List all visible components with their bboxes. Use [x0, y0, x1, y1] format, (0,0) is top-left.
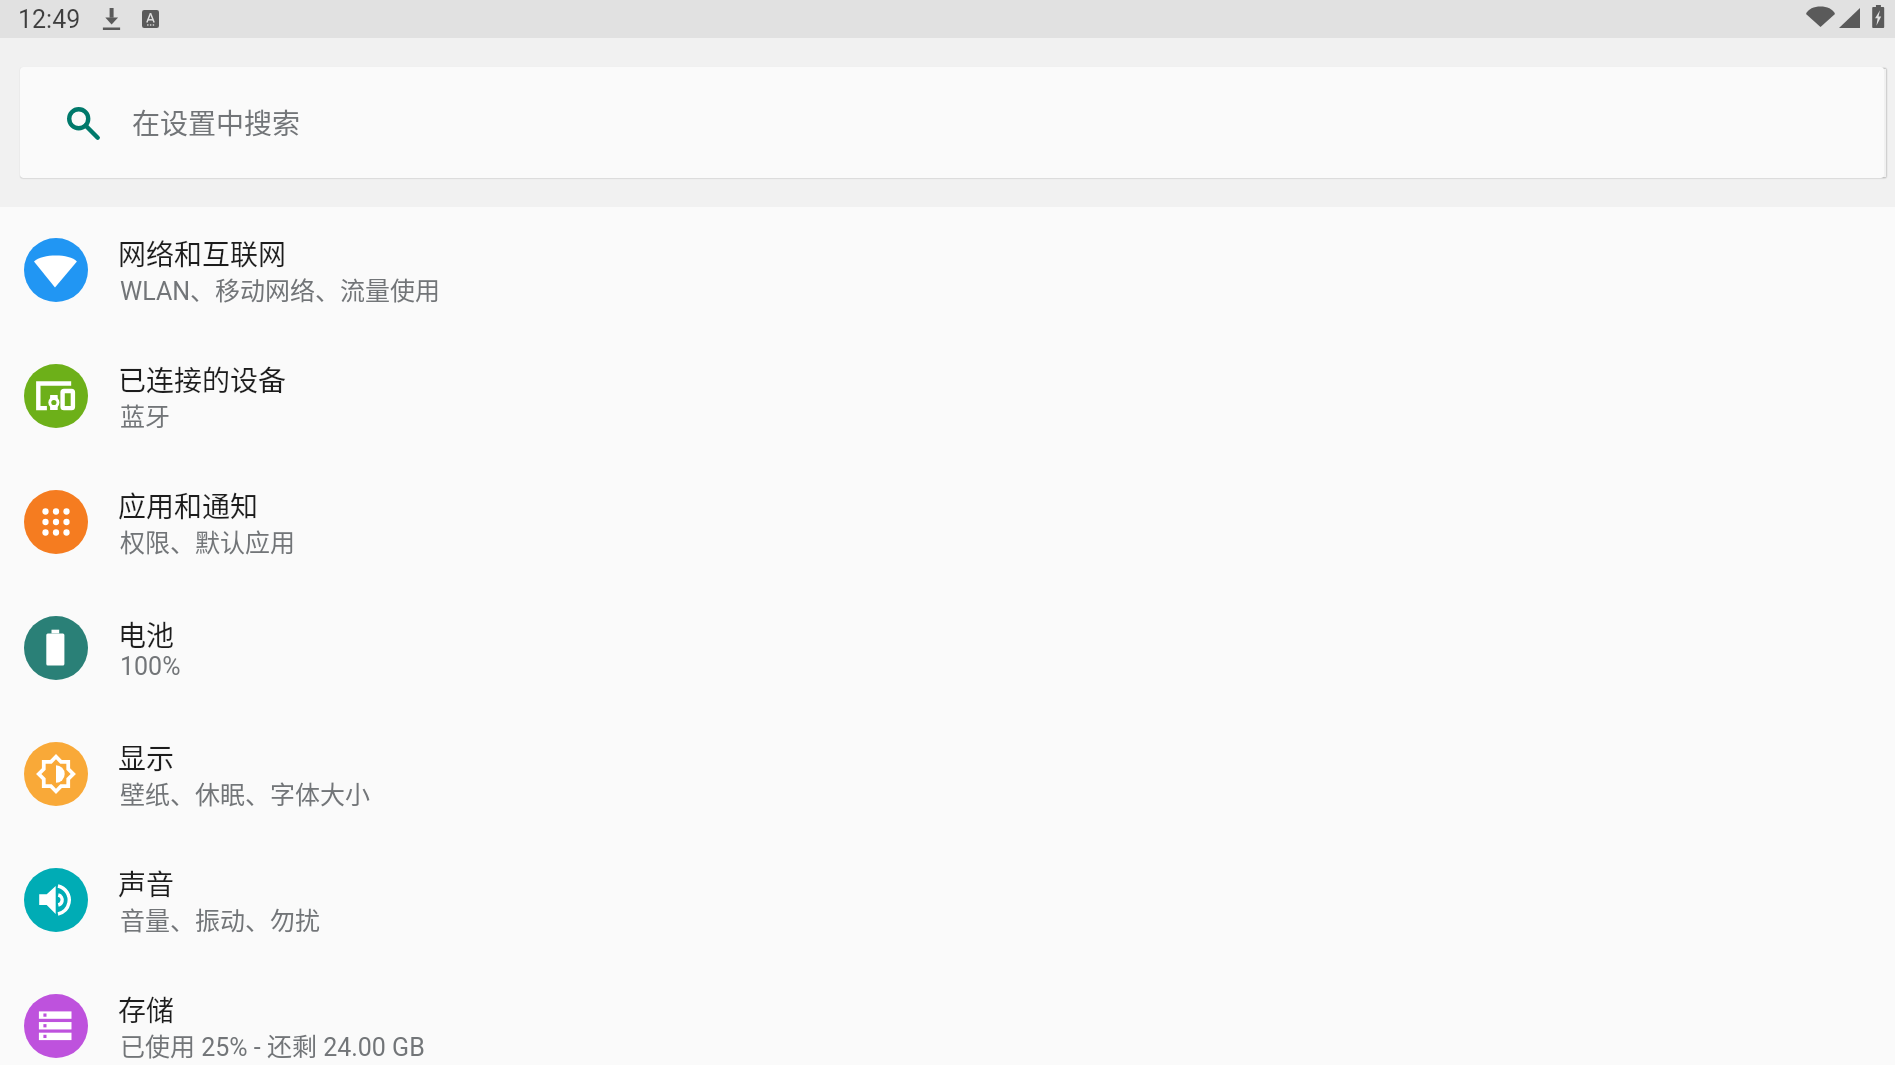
button[interactable]: 应用和通知	[0, 459, 1895, 585]
button[interactable]: 声音	[0, 837, 1895, 963]
staticText: 声音	[118, 863, 175, 904]
staticText: 存储	[118, 989, 175, 1030]
button[interactable]: 存储	[0, 963, 1895, 1065]
staticText: 音量、振动、勿扰	[120, 901, 321, 937]
staticText: 已使用 25% - 还剩 24.00 GB	[120, 1027, 425, 1063]
staticText: WLAN、移动网络、流量使用	[120, 271, 441, 307]
staticText: 已连接的设备	[118, 359, 287, 400]
button[interactable]: 已连接的设备	[0, 333, 1895, 459]
staticText: 12:49	[18, 5, 81, 34]
staticText: 壁纸、休眠、字体大小	[120, 775, 371, 811]
button[interactable]: 显示	[0, 711, 1895, 837]
staticText: 权限、默认应用	[120, 523, 296, 559]
button[interactable]: 电池	[0, 585, 1895, 711]
staticText: 在设置中搜索	[132, 102, 301, 143]
staticText: 网络和互联网	[118, 233, 287, 274]
staticText: 100%	[120, 652, 181, 681]
button[interactable]: 在设置中搜索	[20, 67, 1884, 178]
staticText: 电池	[118, 614, 175, 655]
staticText: 蓝牙	[120, 397, 171, 433]
button[interactable]: 网络和互联网	[0, 207, 1895, 333]
staticText: 应用和通知	[118, 485, 259, 526]
staticText: 显示	[118, 737, 175, 778]
